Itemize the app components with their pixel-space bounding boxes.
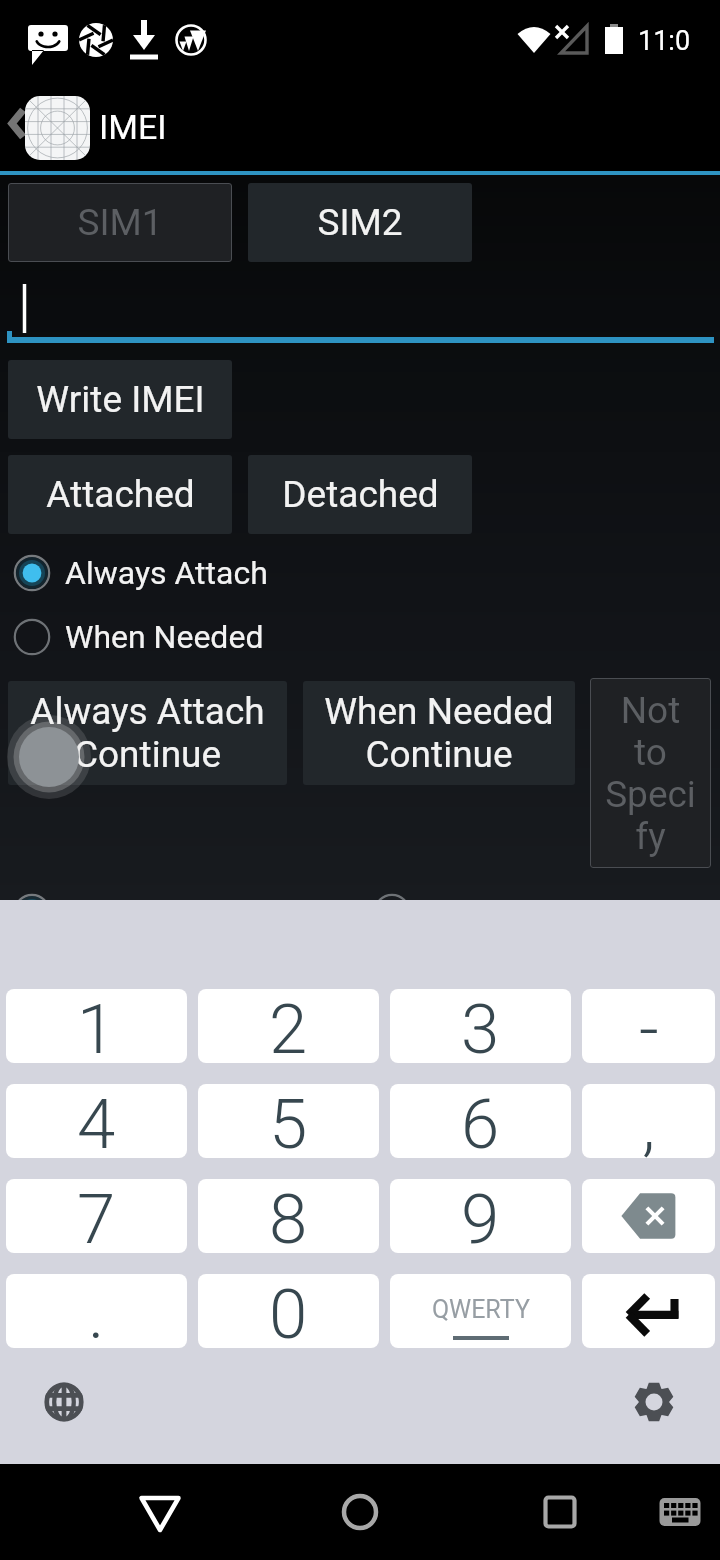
button[interactable]: QWERTY [390,1274,571,1348]
staticText: 7 [77,1179,116,1253]
button[interactable]: 7 [6,1179,187,1253]
staticText: 3 [461,989,500,1063]
staticText: Dual PDP [425,893,559,931]
button[interactable]: Always Attach [0,542,267,604]
staticText: 4 [77,1084,116,1158]
staticText: Not to Speci fy [605,689,696,858]
staticText: 11:0 [638,25,691,57]
button[interactable]: Enter [582,1274,715,1348]
button[interactable]: Backspace [582,1179,715,1253]
button[interactable]: Change language [34,1372,94,1432]
button[interactable]: Write IMEI [8,360,232,439]
button[interactable]: Dual PDP [360,881,558,943]
button[interactable]: Attached [8,455,232,534]
staticText: 5 [269,1084,308,1158]
button[interactable]: Detached [248,455,472,534]
button[interactable]: 2 [198,989,379,1063]
staticText: 6 [461,1084,500,1158]
staticText: Attached [46,473,195,516]
staticText: 0 [269,1274,308,1348]
button[interactable]: 4 [6,1084,187,1158]
button[interactable]: , [582,1084,715,1158]
staticText: 8 [269,1179,308,1253]
staticText: SIM1 [77,201,163,244]
staticText: Always Attach Continue [30,690,265,776]
staticText: 9 [461,1179,500,1253]
staticText: Write IMEI [36,378,205,421]
staticText: QWERTY [432,1295,530,1324]
button[interactable]: Not to Speci fy [590,678,711,868]
button[interactable]: 0 [198,1274,379,1348]
button[interactable]: SIM2 [248,183,472,262]
button[interactable]: When Needed Continue [303,681,575,785]
staticText: , [642,1084,656,1158]
button[interactable]: . [6,1274,187,1348]
button[interactable]: Auto PDP [0,881,201,943]
button[interactable]: When Needed [0,606,263,668]
button[interactable]: 3 [390,989,571,1063]
button[interactable]: - [582,989,715,1063]
button[interactable]: Navigate up [0,84,96,171]
staticText: When Needed [65,618,264,656]
staticText: IMEI [99,107,167,147]
button[interactable]: 8 [198,1179,379,1253]
staticText: Detached [282,473,439,516]
button[interactable]: Home [280,1464,440,1560]
button[interactable]: SIM1 [8,183,232,262]
staticText: 2 [269,989,308,1063]
button[interactable]: 5 [198,1084,379,1158]
staticText: . [88,1274,105,1348]
staticText: Auto PDP [65,893,202,931]
staticText: SIM2 [317,201,403,244]
button[interactable]: 6 [390,1084,571,1158]
staticText: 1 [77,989,116,1063]
staticText: - [639,989,659,1063]
button[interactable]: 1 [6,989,187,1063]
button[interactable]: Settings [624,1372,684,1432]
button[interactable]: 9 [390,1179,571,1253]
button[interactable]: Switch keyboard [640,1464,720,1560]
staticText: When Needed Continue [324,690,554,776]
staticText: Always Attach [65,554,268,592]
button[interactable]: Recent apps [480,1464,640,1560]
button[interactable]: Always Attach Continue [8,681,287,785]
button[interactable]: Hide keyboard [80,1464,240,1560]
